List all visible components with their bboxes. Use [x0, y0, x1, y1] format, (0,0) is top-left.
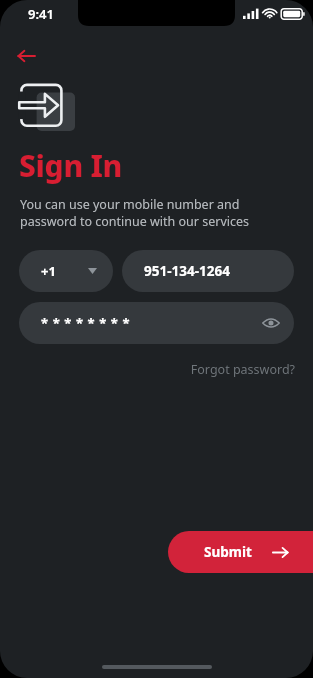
button[interactable]: Show password: [256, 308, 286, 338]
staticText: Forgot password?: [190, 361, 295, 378]
button[interactable]: Forgot password?: [186, 358, 299, 381]
button[interactable]: Submit: [168, 531, 313, 573]
button[interactable]: +1: [19, 250, 113, 292]
staticText: * * * * * * * *: [41, 314, 131, 332]
button[interactable]: * * * * * * * *: [19, 302, 294, 344]
staticText: 9:41: [28, 5, 54, 23]
staticText: Sign In: [19, 145, 122, 186]
staticText: 951-134-1264: [144, 262, 230, 280]
staticText: +1: [41, 262, 56, 280]
button[interactable]: Back: [10, 40, 42, 72]
staticText: Submit: [204, 543, 252, 561]
staticText: You can use your mobile number and passw…: [20, 196, 250, 230]
button[interactable]: 951-134-1264: [122, 250, 294, 292]
